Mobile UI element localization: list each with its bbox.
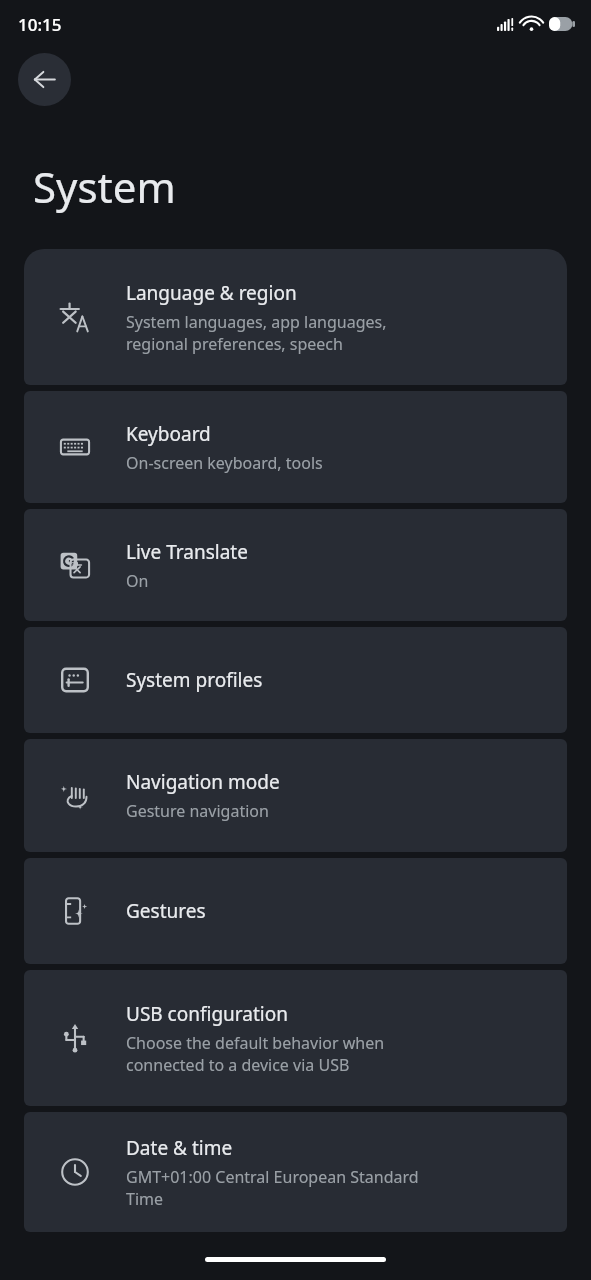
staticText: On xyxy=(126,570,149,592)
button[interactable]: System profiles xyxy=(24,627,567,733)
button[interactable]: Keyboard xyxy=(24,391,567,503)
staticText: On-screen keyboard, tools xyxy=(126,452,323,474)
staticText: USB configuration xyxy=(126,1001,288,1027)
staticText: 10:15 xyxy=(18,13,62,36)
button[interactable]: USB configuration xyxy=(24,970,567,1106)
staticText: GMT+01:00 Central European Standard Time xyxy=(126,1166,419,1210)
staticText: System profiles xyxy=(126,667,263,693)
staticText: Gesture navigation xyxy=(126,800,269,822)
button[interactable]: Gestures xyxy=(24,858,567,964)
staticText: System languages, app languages, regiona… xyxy=(126,311,387,355)
staticText: Keyboard xyxy=(126,421,211,447)
staticText: Date & time xyxy=(126,1135,233,1161)
button[interactable]: Navigation mode xyxy=(24,739,567,852)
staticText: System xyxy=(33,158,176,215)
button[interactable]: Back xyxy=(18,53,71,106)
staticText: Gestures xyxy=(126,898,206,924)
staticText: Navigation mode xyxy=(126,769,280,795)
button[interactable]: Language & region xyxy=(24,249,567,385)
staticText: Live Translate xyxy=(126,539,248,565)
staticText: Choose the default behavior when connect… xyxy=(126,1032,385,1076)
button[interactable]: Date & time xyxy=(24,1112,567,1232)
staticText: Language & region xyxy=(126,280,297,306)
button[interactable]: Live Translate xyxy=(24,509,567,621)
